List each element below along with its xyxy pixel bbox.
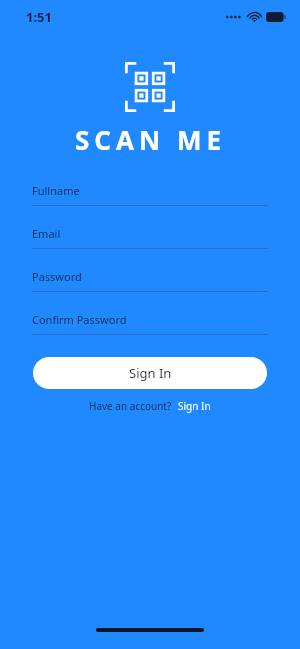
button[interactable]: Password — [32, 269, 268, 292]
other: QR code logo — [125, 62, 175, 112]
staticText: Confirm Password — [32, 312, 127, 327]
staticText: Password — [32, 269, 82, 284]
staticText: Email — [32, 226, 61, 241]
staticText: Have an account? — [89, 399, 172, 413]
button[interactable]: Confirm Password — [32, 312, 268, 335]
staticText: Sign In — [129, 364, 172, 382]
staticText: Fullname — [32, 183, 80, 198]
staticText: 1:51 — [26, 8, 52, 26]
button[interactable]: Sign In — [178, 399, 211, 413]
button[interactable]: Fullname — [32, 183, 268, 206]
button[interactable]: Sign In — [33, 357, 267, 389]
staticText: Sign In — [178, 399, 211, 413]
staticText: SCAN ME — [75, 122, 226, 157]
button[interactable]: Email — [32, 226, 268, 249]
